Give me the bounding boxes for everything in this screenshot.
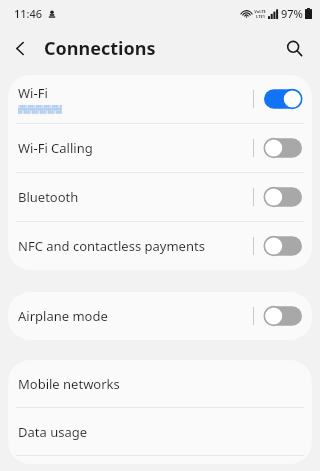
staticText: NFC and contactless payments <box>18 237 205 255</box>
staticText: Connections <box>44 36 156 61</box>
button[interactable]: Off <box>264 186 302 208</box>
button[interactable]: On <box>264 88 302 110</box>
button[interactable]: Back <box>0 28 40 68</box>
button[interactable]: Data usage <box>8 408 312 455</box>
button[interactable]: Mobile networks <box>8 360 312 407</box>
button[interactable]: Off <box>264 235 302 257</box>
staticText: LTE1 <box>256 14 265 19</box>
staticText: Wi-Fi <box>18 84 48 102</box>
staticText: Wi-Fi Calling <box>18 139 93 157</box>
staticText: 97% <box>281 6 303 21</box>
button[interactable]: NFC and contactless payments <box>8 222 312 270</box>
staticText: Mobile networks <box>18 375 120 393</box>
button[interactable]: Off <box>264 305 302 327</box>
staticText: Airplane mode <box>18 307 108 325</box>
button[interactable]: Bluetooth <box>8 173 312 221</box>
button[interactable]: Search <box>274 28 314 68</box>
staticText: VoLTE <box>254 9 266 14</box>
button[interactable]: Airplane mode <box>8 292 312 340</box>
button[interactable]: Off <box>264 137 302 159</box>
staticText: Bluetooth <box>18 188 79 206</box>
button[interactable]: Wi-Fi <box>8 75 312 123</box>
button[interactable]: Wi-Fi Calling <box>8 124 312 172</box>
staticText: Data usage <box>18 423 88 441</box>
staticText: 11:46 <box>14 6 43 21</box>
